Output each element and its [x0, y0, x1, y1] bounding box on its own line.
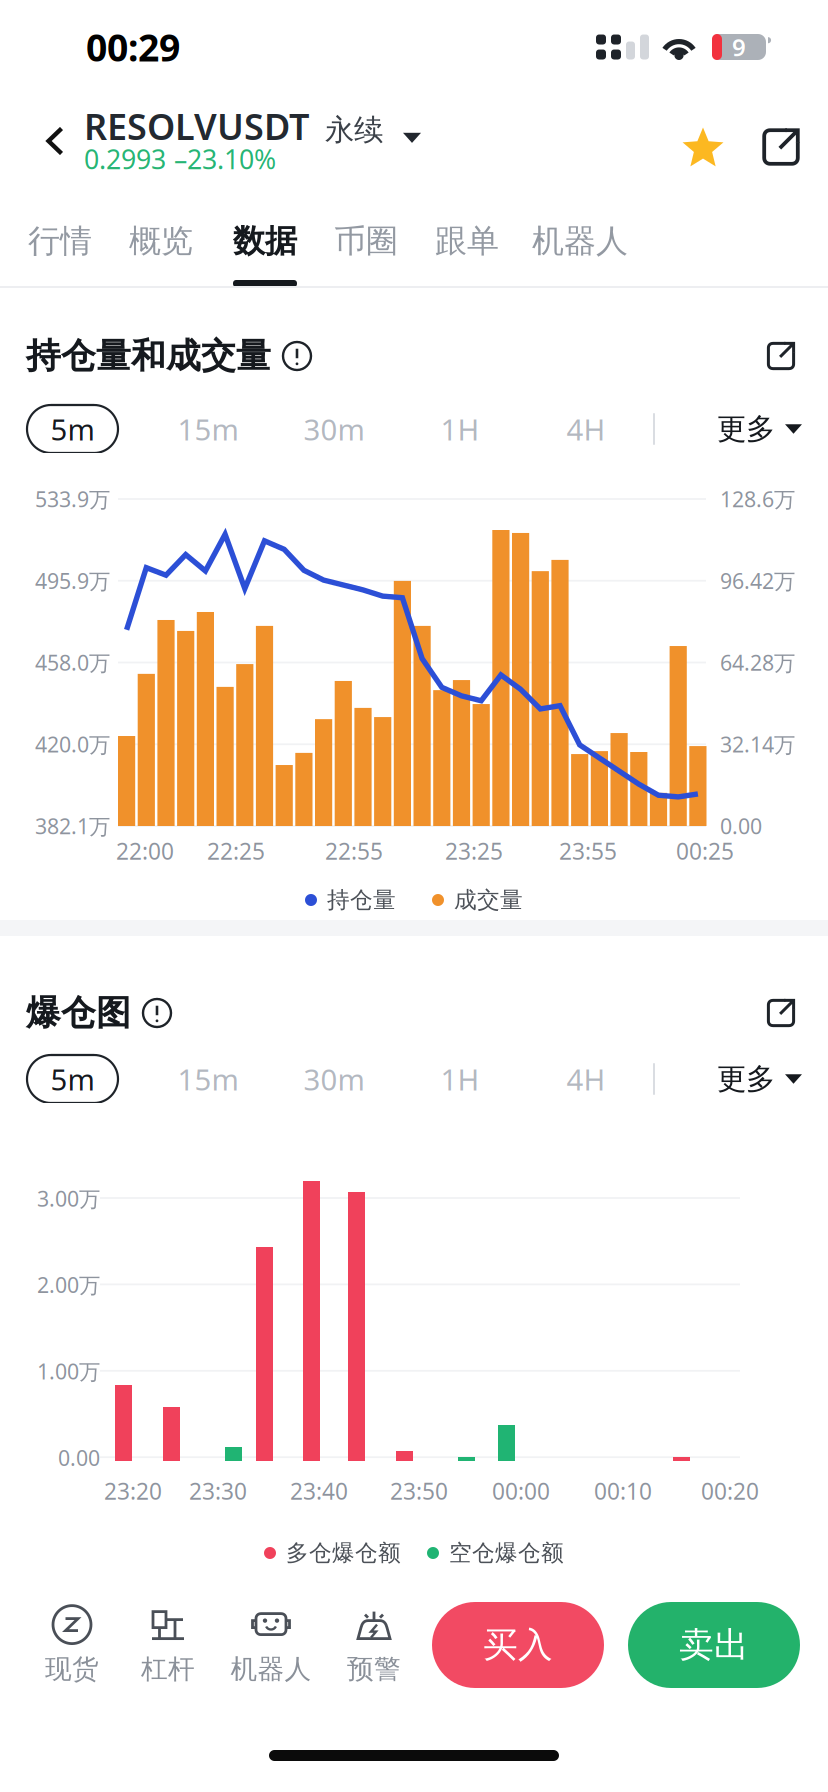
staticText: 96.42万 — [720, 567, 795, 595]
staticText: 32.14万 — [720, 730, 795, 758]
staticText: 458.0万 — [35, 648, 110, 677]
staticText: 2.00万 — [37, 1271, 100, 1299]
staticText: 现货 — [45, 1653, 99, 1685]
staticText: 持仓量 — [327, 886, 396, 914]
button[interactable]: 买入 — [432, 1602, 604, 1688]
staticText: 预警 — [347, 1653, 401, 1685]
staticText: 持仓量和成交量 — [26, 335, 271, 377]
staticText: 1.00万 — [37, 1357, 100, 1385]
button[interactable]: 15m — [145, 405, 271, 453]
button[interactable]: 更多 — [717, 405, 802, 453]
staticText: 数据 — [233, 221, 297, 261]
staticText: 420.0万 — [35, 730, 110, 758]
button[interactable]: 4H — [523, 405, 649, 453]
button[interactable]: 数据 — [214, 196, 316, 287]
button[interactable]: 5m — [27, 405, 118, 453]
staticText: 卖出 — [679, 1624, 749, 1666]
staticText: 机器人 — [532, 221, 628, 261]
button[interactable]: 30m — [271, 405, 397, 453]
staticText: 更多 — [717, 411, 775, 447]
staticText: 0.00 — [720, 812, 762, 840]
button[interactable]: 1H — [397, 1055, 523, 1103]
staticText: 00:25 — [676, 836, 734, 866]
staticText: 23:50 — [390, 1476, 448, 1506]
staticText: 1H — [440, 409, 479, 448]
staticText: 永续 — [325, 112, 383, 148]
button[interactable]: 更多 — [717, 1055, 802, 1103]
staticText: 5m — [50, 409, 94, 448]
staticText: 23:25 — [445, 836, 503, 866]
staticText: 00:00 — [492, 1476, 550, 1506]
staticText: 多仓爆仓额 — [286, 1539, 401, 1567]
staticText: 23:40 — [290, 1476, 348, 1506]
staticText: 买入 — [483, 1624, 553, 1666]
staticText: 1H — [440, 1059, 479, 1098]
staticText: 382.1万 — [35, 812, 110, 840]
staticText: 杠杆 — [141, 1653, 195, 1685]
staticText: 跟单 — [435, 221, 499, 261]
staticText: 15m — [177, 409, 238, 448]
button[interactable]: 30m — [271, 1055, 397, 1103]
staticText: 4H — [566, 409, 605, 448]
staticText: 机器人 — [230, 1653, 311, 1685]
staticText: 22:55 — [325, 836, 383, 866]
button[interactable]: 币圈 — [316, 196, 416, 287]
staticText: 22:25 — [207, 836, 265, 866]
staticText: 533.9万 — [35, 485, 110, 513]
staticText: 成交量 — [454, 886, 523, 914]
staticText: 空仓爆仓额 — [449, 1539, 564, 1567]
button[interactable]: 机器人 — [518, 196, 642, 287]
staticText: 9 — [732, 31, 746, 63]
button[interactable]: Open full chart — [758, 330, 804, 382]
button[interactable]: 卖出 — [628, 1602, 800, 1688]
staticText: 64.28万 — [720, 648, 795, 677]
button[interactable]: 1H — [397, 405, 523, 453]
staticText: –23.10% — [174, 141, 276, 177]
staticText: 30m — [303, 409, 364, 448]
staticText: 23:55 — [559, 836, 617, 866]
button[interactable]: 概览 — [108, 196, 214, 287]
button[interactable]: 15m — [145, 1055, 271, 1103]
staticText: 128.6万 — [720, 485, 795, 513]
staticText: 23:30 — [189, 1476, 247, 1506]
staticText: 15m — [177, 1059, 238, 1098]
staticText: 23:20 — [104, 1476, 162, 1506]
button[interactable]: 机器人 — [216, 1590, 326, 1700]
staticText: 0.00 — [58, 1443, 100, 1472]
button[interactable]: 5m — [27, 1055, 118, 1103]
staticText: 爆仓图 — [26, 992, 131, 1034]
staticText: 币圈 — [334, 221, 398, 261]
button[interactable]: Share — [755, 98, 807, 184]
button[interactable]: 跟单 — [416, 196, 518, 287]
staticText: RESOLVUSDT — [84, 102, 309, 150]
button[interactable]: 预警 — [326, 1590, 422, 1700]
staticText: 00:10 — [594, 1476, 652, 1506]
button[interactable]: 4H — [523, 1055, 649, 1103]
staticText: 行情 — [28, 221, 92, 261]
staticText: 30m — [303, 1059, 364, 1098]
staticText: 更多 — [717, 1061, 775, 1097]
button[interactable]: 行情 — [12, 196, 108, 287]
staticText: 495.9万 — [35, 567, 110, 595]
button[interactable]: 现货 — [24, 1590, 120, 1700]
staticText: 00:29 — [86, 22, 180, 72]
staticText: 4H — [566, 1059, 605, 1098]
button[interactable]: 杠杆 — [120, 1590, 216, 1700]
staticText: 概览 — [129, 221, 193, 261]
button[interactable]: Back — [26, 98, 84, 184]
staticText: 0.2993 — [84, 141, 166, 177]
button[interactable]: Add to favorites — [674, 98, 732, 184]
staticText: 00:20 — [701, 1476, 759, 1506]
staticText: 3.00万 — [37, 1184, 100, 1212]
staticText: 5m — [50, 1059, 94, 1098]
button[interactable]: Open full chart — [758, 987, 804, 1039]
staticText: 22:00 — [116, 836, 174, 866]
